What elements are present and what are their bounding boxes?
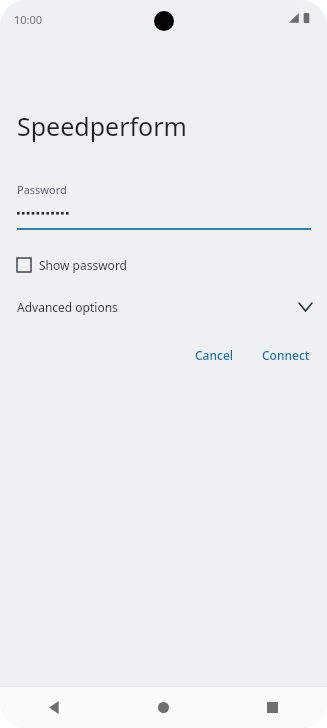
button[interactable]: Connect: [252, 341, 320, 369]
staticText: Show password: [39, 257, 127, 273]
staticText: Speedperform: [17, 109, 187, 143]
button[interactable]: Back: [0, 687, 109, 728]
staticText: Cancel: [195, 347, 234, 363]
button[interactable]: Home: [109, 687, 218, 728]
other: Expand advanced options: [299, 303, 312, 311]
button[interactable]: Show password: [0, 251, 327, 279]
staticText: Advanced options: [17, 299, 118, 315]
button[interactable]: [0, 209, 327, 230]
button[interactable]: Advanced options: [0, 293, 327, 321]
staticText: Password: [17, 182, 67, 197]
button[interactable]: Cancel: [185, 341, 244, 369]
staticText: 10:00: [14, 12, 43, 27]
button[interactable]: Recent apps: [218, 687, 327, 728]
staticText: Connect: [262, 347, 310, 363]
